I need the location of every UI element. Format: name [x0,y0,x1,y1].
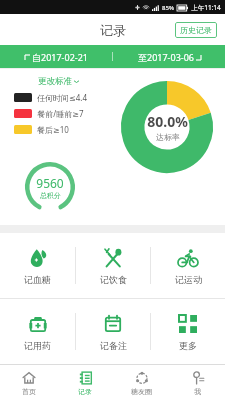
button[interactable]: 80.0% [121,81,213,173]
staticText: 9560 [36,175,64,191]
button[interactable]: 记用药 [0,299,75,364]
staticText: 记录 [100,22,126,38]
staticText: 达标率 [156,132,180,142]
button[interactable]: 历史记录 [175,22,217,38]
staticText: 85% [162,4,174,12]
staticText: 任何时间≤4.4 [37,92,87,103]
staticText: 记饮食 [100,274,127,285]
staticText: 更改标准 [38,76,72,87]
button[interactable]: 记录 [57,365,113,400]
staticText: 总积分 [40,191,61,200]
staticText: 记备注 [100,340,127,351]
staticText: 自2017-02-21 [32,51,88,63]
button[interactable]: 记备注 [76,299,150,364]
staticText: 历史记录 [180,25,212,35]
staticText: 记用药 [24,340,51,351]
staticText: 至2017-03-06 [138,51,194,63]
button[interactable]: 记血糖 [0,233,75,298]
button[interactable]: 更改标准 [38,76,79,87]
button[interactable]: 至2017-03-06 [113,45,225,68]
staticText: 首页 [22,387,36,396]
staticText: 记录 [78,387,92,396]
button[interactable]: 更多 [151,299,225,364]
button[interactable]: 自2017-02-21 [0,45,112,68]
staticText: 记运动 [175,274,202,285]
staticText: 餐后≥10 [37,124,69,135]
staticText: 糖友圈 [131,387,152,396]
staticText: 上午11:14 [191,3,221,12]
staticText: 80.0% [147,112,188,131]
button[interactable]: 记运动 [151,233,225,298]
button[interactable]: 我 [169,365,225,400]
staticText: 餐前/睡前≥7 [37,108,84,119]
staticText: 记血糖 [24,274,51,285]
button[interactable]: 记饮食 [76,233,150,298]
staticText: 我 [194,387,201,396]
button[interactable]: 糖友圈 [113,365,169,400]
button[interactable]: 9560 [24,161,76,213]
staticText: 更多 [179,340,197,351]
button[interactable]: 首页 [0,365,57,400]
